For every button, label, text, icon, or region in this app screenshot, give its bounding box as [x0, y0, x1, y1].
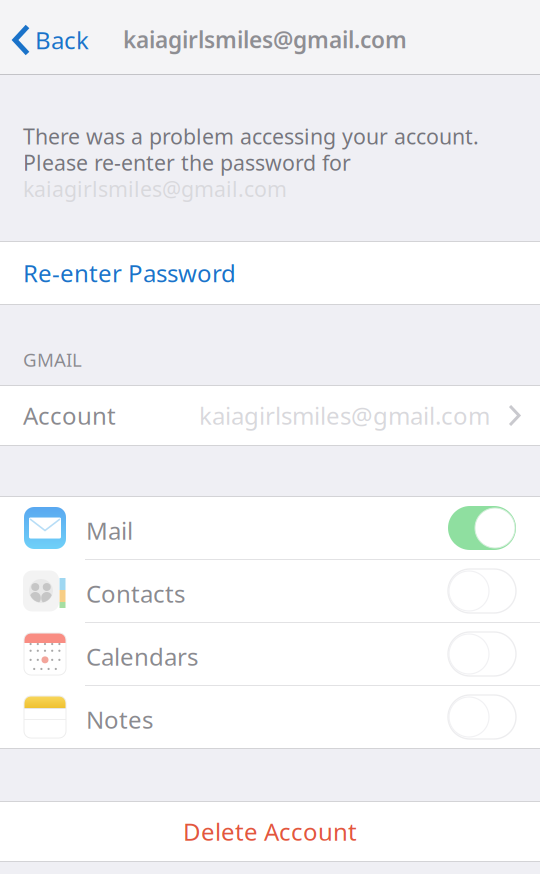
button[interactable]: Notes — [0, 686, 540, 748]
staticText: Re-enter Password — [23, 257, 236, 289]
button[interactable]: Calendars — [0, 623, 540, 685]
button[interactable]: Contacts — [0, 560, 540, 622]
staticText: Contacts — [86, 578, 185, 609]
button[interactable]: Delete Account — [0, 802, 540, 861]
staticText: kaiagirlsmiles@gmail.com — [123, 24, 407, 54]
staticText: kaiagirlsmiles@gmail.com — [199, 400, 490, 431]
staticText: Account — [23, 400, 116, 431]
button[interactable]: Back — [0, 0, 97, 74]
staticText: Please re-enter the password for — [23, 148, 351, 177]
staticText: kaiagirlsmiles@gmail.com — [23, 175, 287, 203]
staticText: Back — [35, 24, 89, 56]
staticText: There was a problem accessing your accou… — [23, 122, 479, 150]
button[interactable]: Mail — [0, 497, 540, 559]
staticText: Calendars — [86, 641, 198, 672]
staticText: GMAIL — [23, 347, 82, 372]
staticText: Notes — [86, 704, 153, 735]
button[interactable]: Re-enter Password — [0, 242, 540, 304]
staticText: Delete Account — [183, 816, 357, 847]
button[interactable]: Account — [0, 386, 540, 445]
staticText: Mail — [86, 515, 133, 546]
